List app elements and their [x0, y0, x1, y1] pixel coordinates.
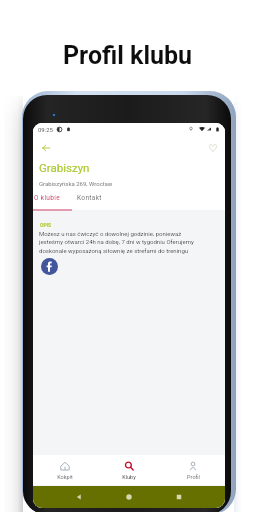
button[interactable]: Kokpit [33, 455, 97, 485]
staticText: O klubie [34, 194, 61, 202]
staticText: Profil klubu [63, 41, 193, 70]
staticText: 09:25 [38, 126, 53, 133]
button[interactable]: Kontakt [72, 189, 116, 206]
staticText: Profil [187, 474, 200, 480]
button[interactable]: Recent apps [175, 493, 183, 501]
staticText: Grabiszyńska 269, Wrocław [39, 180, 113, 187]
staticText: Kontakt [77, 194, 102, 202]
button[interactable]: Facebook [41, 258, 58, 275]
button[interactable]: Favorite [205, 140, 221, 156]
button[interactable]: Back [75, 493, 83, 501]
button[interactable]: Home [125, 493, 133, 501]
staticText: OPIS [40, 222, 52, 228]
staticText: Grabiszyn [39, 161, 90, 174]
staticText: Możesz u nas ćwiczyć o dowolnej godzinie… [39, 230, 206, 254]
button[interactable]: O klubie [33, 189, 72, 206]
button[interactable]: Kluby [97, 455, 161, 485]
staticText: Kluby [122, 474, 136, 480]
button[interactable]: Profil [161, 455, 225, 485]
staticText: Kokpit [57, 474, 73, 480]
button[interactable]: Back [38, 140, 54, 156]
